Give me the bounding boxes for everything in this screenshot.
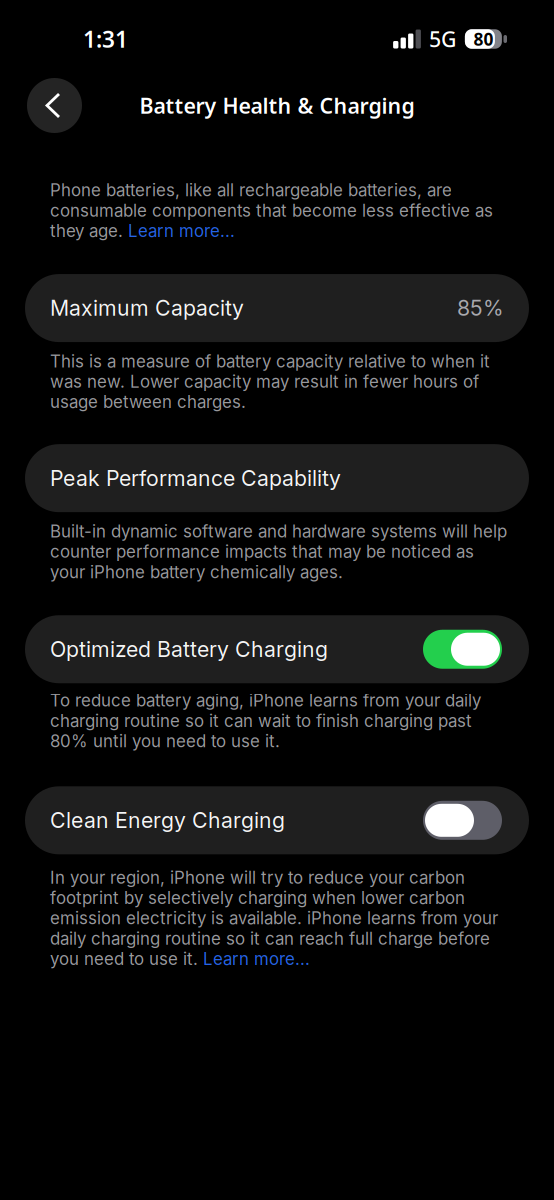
staticText: This is a measure of battery capacity re…	[50, 351, 490, 412]
staticText: Peak Performance Capability	[50, 465, 341, 491]
staticText: Clean Energy Charging	[50, 807, 285, 833]
staticText: To reduce battery aging, iPhone learns f…	[50, 690, 481, 751]
staticText: 5G	[429, 25, 457, 53]
staticText: Built-in dynamic software and hardware s…	[50, 521, 507, 582]
button[interactable]: Maximum Capacity	[25, 274, 529, 342]
button[interactable]: Back	[27, 78, 82, 133]
button[interactable]: Optimized Battery Charging	[25, 615, 529, 683]
staticText: 80	[473, 27, 493, 50]
staticText: 85%	[457, 295, 504, 321]
staticText: Maximum Capacity	[50, 295, 244, 321]
staticText: 1:31	[83, 24, 128, 54]
staticText: Phone batteries, like all rechargeable b…	[50, 180, 493, 241]
button[interactable]: Clean Energy Charging	[25, 786, 529, 854]
staticText: In your region, iPhone will try to reduc…	[50, 867, 498, 969]
staticText: Battery Health & Charging	[139, 91, 414, 120]
button[interactable]: Peak Performance Capability	[25, 444, 529, 512]
staticText: Optimized Battery Charging	[50, 636, 328, 662]
